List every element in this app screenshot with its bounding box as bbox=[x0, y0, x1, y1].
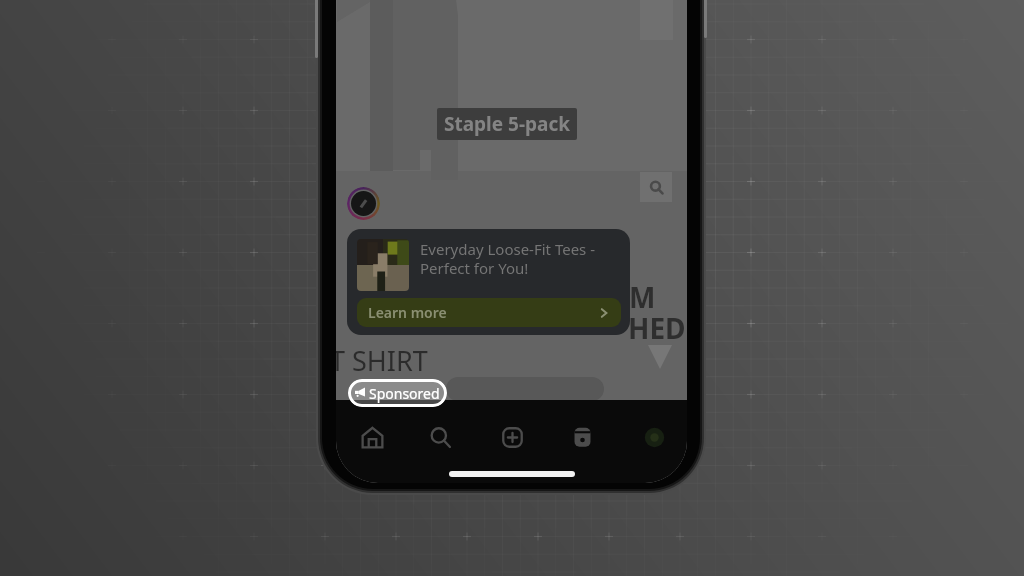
staticText: Everyday Loose-Fit Tees - Perfect for Yo… bbox=[420, 239, 596, 278]
staticText: Staple 5-pack bbox=[444, 111, 570, 137]
staticText: HED bbox=[628, 309, 686, 347]
staticText: T SHIRT bbox=[336, 342, 428, 379]
button[interactable]: Home bbox=[350, 415, 394, 459]
button[interactable]: Reels bbox=[560, 415, 604, 459]
button[interactable]: Sponsored bbox=[348, 379, 447, 407]
button[interactable]: Learn more bbox=[357, 298, 621, 327]
button[interactable]: Staple 5-pack bbox=[437, 108, 577, 140]
button[interactable]: Profile bbox=[632, 415, 676, 459]
button[interactable]: Search bbox=[640, 172, 672, 202]
button[interactable]: Create bbox=[490, 415, 534, 459]
button[interactable]: Profile avatar bbox=[347, 187, 380, 220]
staticText: Sponsored bbox=[369, 384, 440, 403]
button[interactable]: Everyday Loose-Fit Tees - Perfect for Yo… bbox=[347, 229, 630, 335]
staticText: Learn more bbox=[368, 303, 447, 322]
button[interactable]: Search bbox=[418, 415, 462, 459]
staticText: M bbox=[629, 278, 656, 316]
